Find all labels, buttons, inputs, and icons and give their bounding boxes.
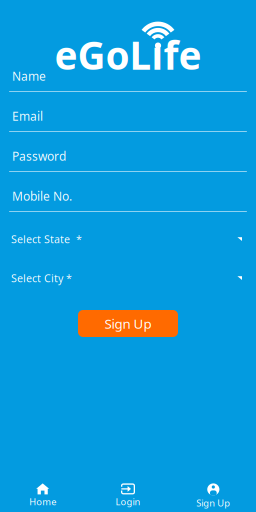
button[interactable]: Name (9, 52, 247, 92)
staticText: Name (12, 68, 46, 84)
staticText: eGoLıfe (54, 29, 201, 80)
button[interactable]: Password (9, 132, 247, 172)
button[interactable]: Email (9, 92, 247, 132)
staticText: Mobile No. (12, 188, 72, 204)
staticText: Select State * (11, 232, 82, 246)
staticText: Home (29, 495, 56, 508)
button[interactable]: Mobile No. (9, 172, 247, 212)
button[interactable]: Select State * (9, 212, 247, 251)
button[interactable]: Sign Up (78, 310, 178, 337)
button[interactable]: Sign Up (171, 483, 256, 509)
staticText: Sign Up (196, 497, 230, 509)
staticText: Select City * (11, 271, 72, 285)
button[interactable]: Login (85, 483, 171, 508)
button[interactable]: Select City * (9, 251, 247, 290)
staticText: Login (115, 495, 140, 508)
staticText: Password (12, 148, 66, 164)
staticText: Sign Up (104, 315, 151, 332)
button[interactable]: Home (0, 483, 85, 508)
staticText: Email (12, 108, 43, 124)
